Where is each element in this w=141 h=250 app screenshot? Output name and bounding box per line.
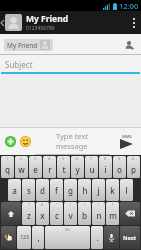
- button[interactable]: !: [92, 202, 105, 225]
- button[interactable]: 3: [29, 156, 42, 178]
- staticText: p: [131, 164, 136, 175]
- staticText: (: [70, 202, 72, 207]
- staticText: z: [27, 210, 31, 221]
- button[interactable]: ": [50, 202, 63, 225]
- staticText: t: [62, 164, 66, 175]
- staticText: .: [96, 232, 99, 243]
- button[interactable]: 6: [71, 156, 84, 178]
- staticText: ): [84, 202, 86, 207]
- staticText: w: [18, 164, 25, 175]
- button[interactable]: a: [8, 179, 21, 201]
- button[interactable]: ,: [32, 226, 44, 249]
- staticText: c: [55, 210, 59, 221]
- staticText: Type text: [56, 131, 89, 141]
- staticText: 4: [48, 156, 51, 161]
- staticText: y: [75, 164, 80, 175]
- button[interactable]: #: [36, 202, 49, 225]
- button[interactable]: 4: [43, 156, 56, 178]
- button[interactable]: *: [22, 202, 35, 225]
- staticText: ?: [112, 202, 114, 207]
- staticText: r: [48, 164, 52, 175]
- button[interactable]: Switch input method: [1, 226, 16, 249]
- button[interactable]: j: [92, 179, 105, 201]
- staticText: 9: [118, 156, 121, 161]
- staticText: l: [125, 185, 128, 196]
- staticText: ": [56, 202, 58, 207]
- staticText: h: [82, 185, 88, 196]
- button[interactable]: h: [78, 179, 91, 201]
- button[interactable]: My Friend: [4, 39, 53, 51]
- staticText: u: [89, 164, 95, 175]
- staticText: 0: [132, 156, 135, 161]
- button[interactable]: Back: [0, 11, 5, 34]
- staticText: *: [28, 202, 30, 207]
- staticText: n: [96, 210, 102, 221]
- button[interactable]: k: [106, 179, 119, 201]
- button[interactable]: 5: [57, 156, 70, 178]
- staticText: a: [12, 185, 17, 196]
- staticText: q: [5, 164, 10, 175]
- staticText: x: [40, 210, 45, 221]
- staticText: g: [68, 185, 73, 196]
- staticText: My Friend: [26, 13, 69, 25]
- button[interactable]: More options: [127, 11, 141, 34]
- button[interactable]: 0: [127, 156, 140, 178]
- staticText: e: [33, 164, 38, 175]
- button[interactable]: Voice input: [104, 226, 119, 249]
- staticText: b: [82, 210, 87, 221]
- staticText: Next: [123, 234, 137, 241]
- staticText: ,: [37, 232, 40, 243]
- staticText: My Friend: [7, 41, 38, 50]
- button[interactable]: ?: [106, 202, 119, 225]
- staticText: 1: [6, 156, 9, 161]
- button[interactable]: 1: [1, 156, 14, 178]
- button[interactable]: Type text: [35, 127, 112, 155]
- button[interactable]: s: [22, 179, 35, 201]
- button[interactable]: 123: [17, 226, 31, 249]
- staticText: m: [109, 210, 117, 221]
- staticText: EN: [65, 227, 70, 232]
- button[interactable]: Shift: [1, 202, 21, 225]
- staticText: 7: [90, 156, 93, 161]
- button[interactable]: Subject: [0, 55, 141, 74]
- button[interactable]: Next: [120, 226, 140, 249]
- button[interactable]: .: [91, 226, 103, 249]
- button[interactable]: Add attachment: [3, 134, 17, 148]
- staticText: k: [110, 185, 115, 196]
- staticText: MMS: [122, 134, 132, 139]
- button[interactable]: Add contact: [121, 37, 137, 53]
- staticText: 6: [76, 156, 79, 161]
- staticText: message: [56, 141, 88, 151]
- staticText: o: [117, 164, 122, 175]
- button[interactable]: Delete: [120, 202, 140, 225]
- staticText: i: [104, 164, 107, 175]
- button[interactable]: Send MMS: [114, 127, 138, 155]
- button[interactable]: Insert emoticon: [18, 134, 32, 148]
- staticText: j: [97, 185, 100, 196]
- staticText: 8: [104, 156, 107, 161]
- staticText: #: [41, 202, 44, 207]
- staticText: s: [27, 185, 31, 196]
- staticText: 3: [34, 156, 37, 161]
- button[interactable]: ): [78, 202, 91, 225]
- button[interactable]: EN: [45, 226, 90, 249]
- button[interactable]: 2: [15, 156, 28, 178]
- staticText: !: [98, 202, 99, 207]
- staticText: 0123456789: [26, 25, 55, 32]
- staticText: d: [40, 185, 45, 196]
- staticText: 2: [20, 156, 23, 161]
- button[interactable]: 7: [85, 156, 98, 178]
- staticText: 123: [20, 234, 29, 241]
- staticText: v: [68, 210, 73, 221]
- button[interactable]: f: [50, 179, 63, 201]
- staticText: 5: [62, 156, 65, 161]
- button[interactable]: g: [64, 179, 77, 201]
- staticText: Subject: [5, 59, 33, 70]
- button[interactable]: 8: [99, 156, 112, 178]
- staticText: f: [55, 185, 58, 196]
- staticText: 12:00: [119, 1, 139, 11]
- button[interactable]: d: [36, 179, 49, 201]
- button[interactable]: (: [64, 202, 77, 225]
- button[interactable]: l: [120, 179, 133, 201]
- button[interactable]: 9: [113, 156, 126, 178]
